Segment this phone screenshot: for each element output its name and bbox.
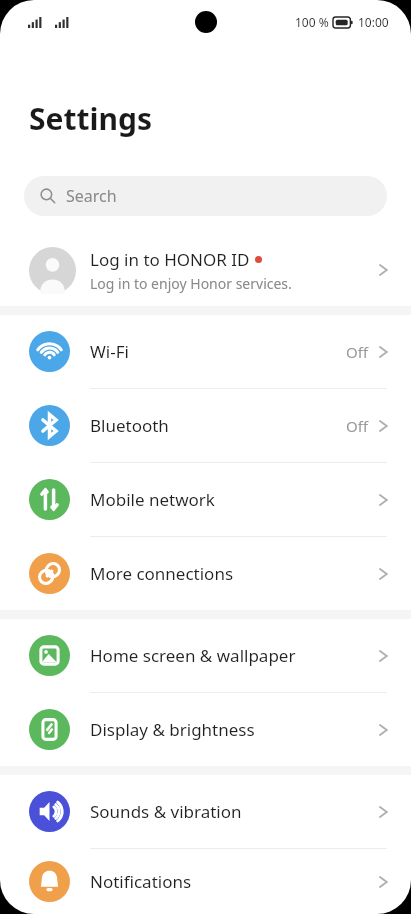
other: Home screen and wallpaper: [29, 635, 70, 676]
other: Search: [40, 188, 56, 204]
button[interactable]: Notifications: [0, 849, 411, 914]
staticText: 100 %: [295, 14, 329, 30]
staticText: Off: [346, 416, 369, 436]
button[interactable]: Wi-Fi: [0, 315, 411, 388]
staticText: Sounds & vibration: [90, 800, 378, 823]
button[interactable]: Log in to HONOR ID: [0, 234, 411, 306]
other: Display and brightness: [29, 709, 70, 750]
other: More connections: [29, 553, 70, 594]
staticText: Search: [66, 185, 117, 207]
button[interactable]: Bluetooth: [0, 389, 411, 462]
staticText: Bluetooth: [90, 414, 346, 437]
staticText: Settings: [29, 98, 152, 139]
staticText: Notifications: [90, 870, 378, 893]
other: Wi-Fi: [29, 331, 70, 372]
other: Notifications: [29, 861, 70, 902]
staticText: Log in to HONOR ID: [90, 248, 250, 271]
button[interactable]: Mobile network: [0, 463, 411, 536]
other: Mobile network: [29, 479, 70, 520]
staticText: Display & brightness: [90, 718, 378, 741]
button[interactable]: Search: [24, 176, 387, 216]
staticText: Log in to enjoy Honor services.: [90, 274, 292, 293]
staticText: Home screen & wallpaper: [90, 644, 378, 667]
staticText: Mobile network: [90, 488, 378, 511]
staticText: Off: [346, 342, 369, 362]
staticText: More connections: [90, 562, 378, 585]
staticText: Wi-Fi: [90, 340, 346, 363]
staticText: 10:00: [358, 14, 389, 30]
button[interactable]: Sounds and vibration: [0, 775, 411, 848]
button[interactable]: More connections: [0, 537, 411, 610]
other: Bluetooth: [29, 405, 70, 446]
button[interactable]: Display and brightness: [0, 693, 411, 766]
button[interactable]: Home screen and wallpaper: [0, 619, 411, 692]
other: Sounds and vibration: [29, 791, 70, 832]
